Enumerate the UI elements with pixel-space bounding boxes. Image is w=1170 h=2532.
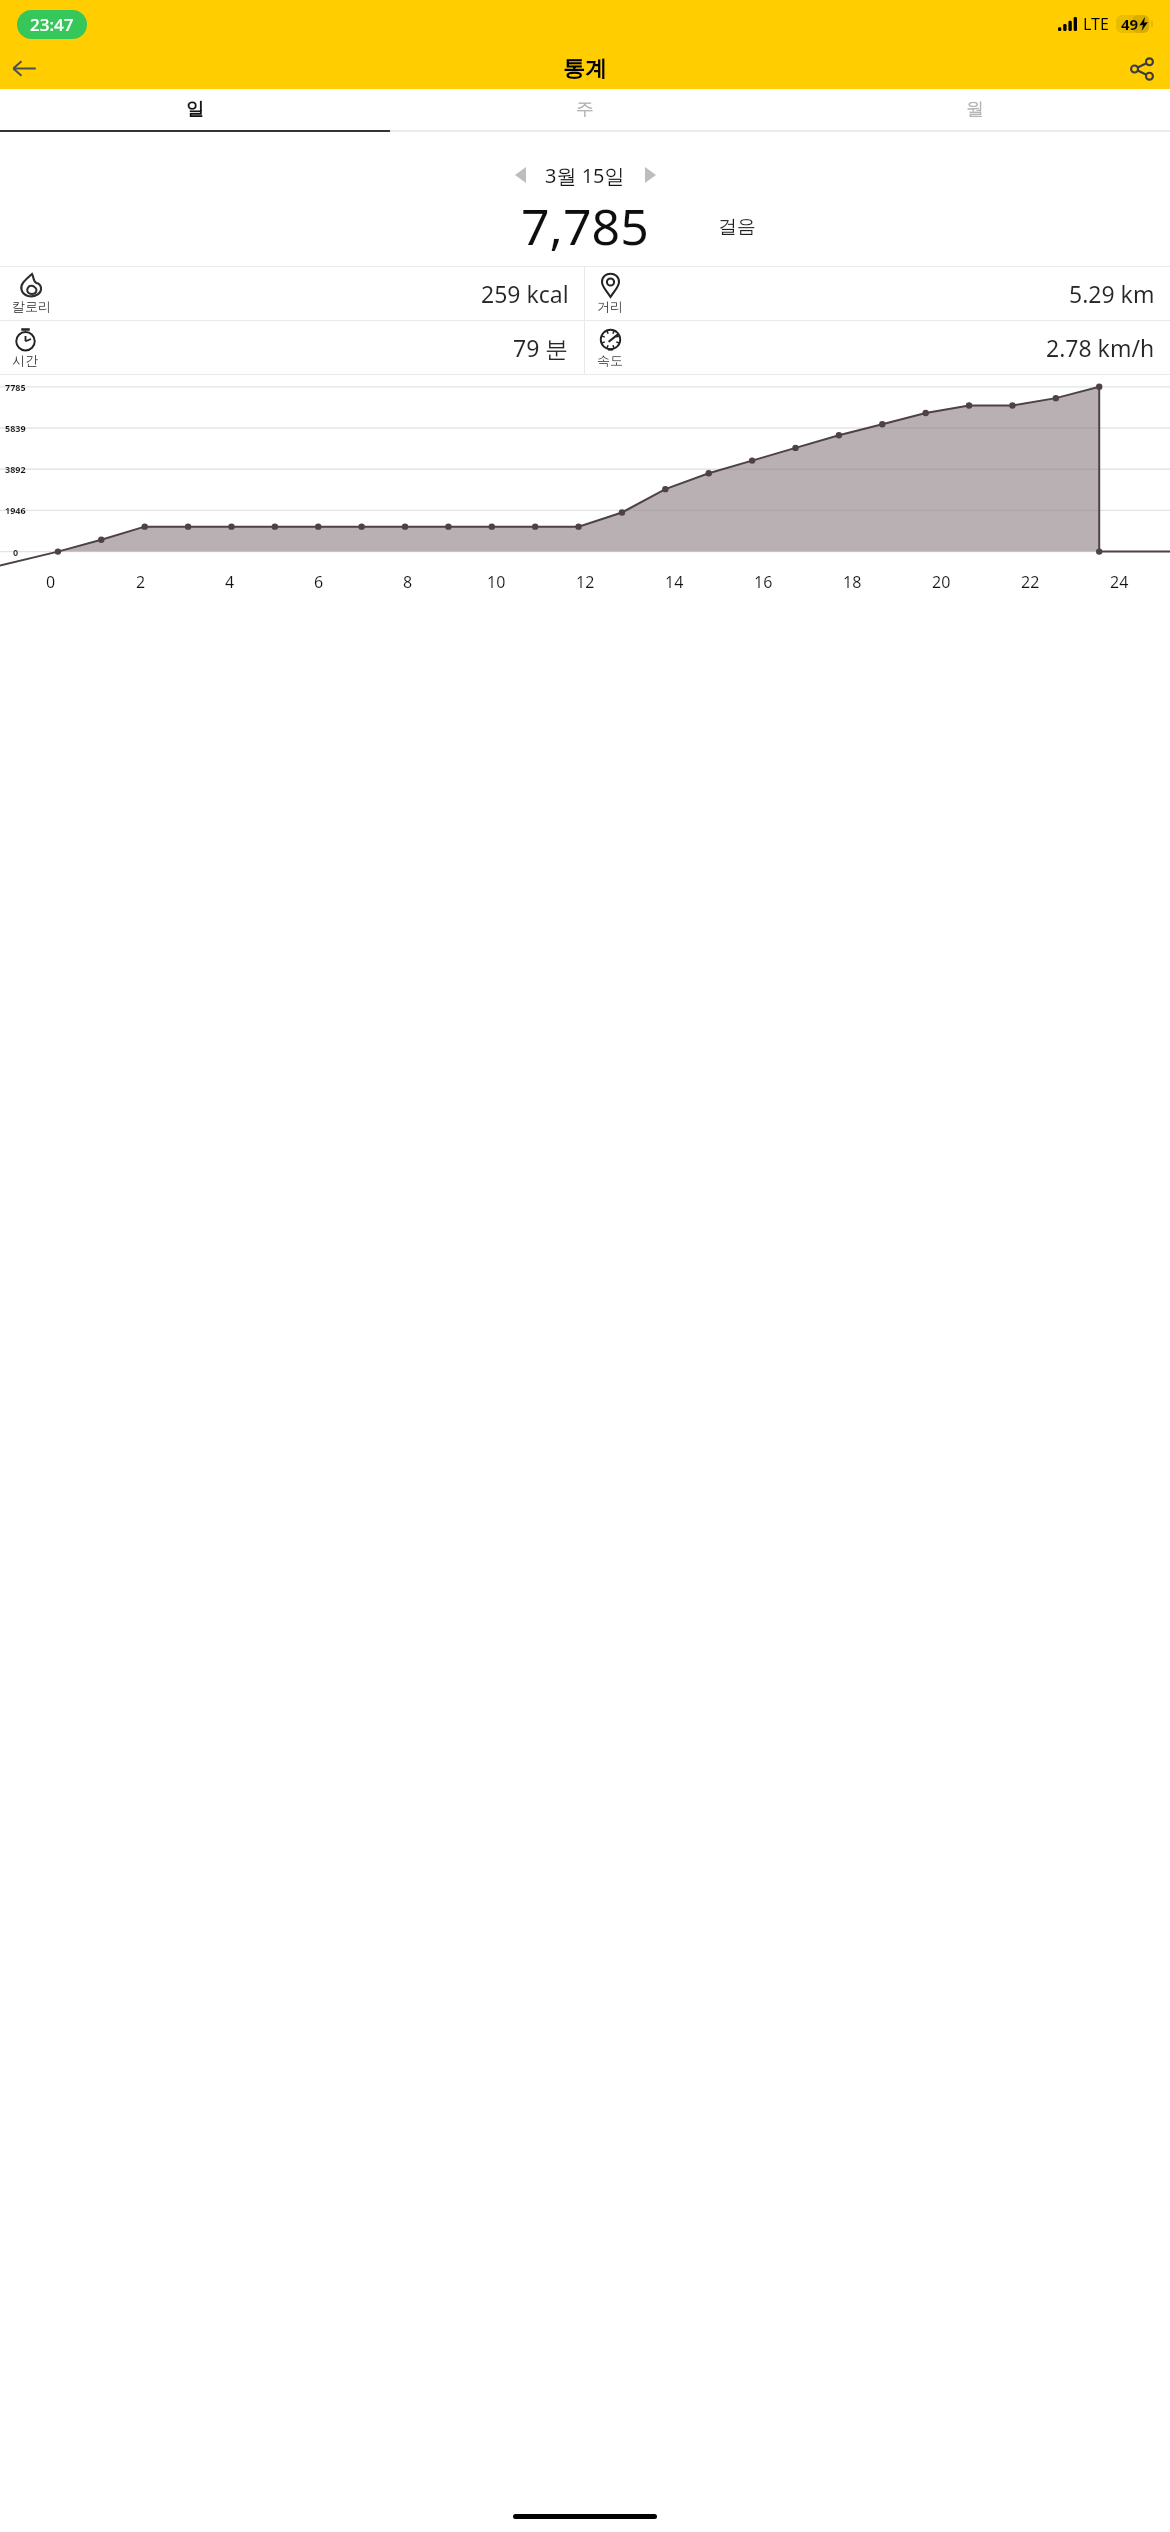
- button[interactable]: 거리: [585, 267, 1170, 320]
- staticText: 7,785: [521, 192, 649, 256]
- staticText: 8: [403, 571, 413, 593]
- staticText: 24: [1110, 571, 1129, 593]
- staticText: 거리: [597, 298, 623, 314]
- button[interactable]: 시간: [0, 321, 584, 374]
- staticText: 18: [843, 571, 862, 593]
- staticText: 4: [225, 571, 235, 593]
- staticText: 0: [13, 546, 19, 558]
- staticText: 2.78 km/h: [1046, 332, 1155, 363]
- staticText: 주: [576, 98, 594, 121]
- staticText: 79 분: [513, 332, 569, 363]
- staticText: 20: [932, 571, 951, 593]
- staticText: 2: [136, 571, 146, 593]
- staticText: 12: [576, 571, 595, 593]
- staticText: 23:47: [30, 13, 74, 36]
- button[interactable]: Previous day: [503, 158, 537, 192]
- staticText: LTE: [1083, 13, 1109, 35]
- staticText: 3892: [5, 463, 26, 475]
- staticText: 1946: [5, 504, 26, 516]
- staticText: 14: [665, 571, 684, 593]
- staticText: 일: [186, 98, 204, 121]
- button[interactable]: Next day: [633, 158, 667, 192]
- staticText: 5839: [5, 422, 26, 434]
- button[interactable]: 칼로리: [0, 267, 584, 320]
- staticText: 22: [1021, 571, 1040, 593]
- button[interactable]: 속도: [585, 321, 1170, 374]
- staticText: 속도: [597, 352, 623, 368]
- staticText: 5.29 km: [1069, 278, 1155, 309]
- staticText: 시간: [12, 352, 38, 368]
- staticText: 0: [46, 571, 56, 593]
- staticText: 걸음: [718, 215, 756, 239]
- button[interactable]: 일: [0, 89, 390, 130]
- staticText: 3월 15일: [545, 162, 625, 189]
- staticText: 10: [487, 571, 506, 593]
- staticText: 7785: [5, 381, 26, 393]
- button[interactable]: 월: [780, 89, 1170, 130]
- staticText: 월: [966, 98, 984, 121]
- button[interactable]: Share: [1120, 48, 1164, 89]
- staticText: 16: [754, 571, 773, 593]
- staticText: 49: [1121, 14, 1139, 34]
- staticText: 6: [314, 571, 324, 593]
- staticText: 통계: [563, 55, 607, 83]
- button[interactable]: Back: [2, 48, 46, 89]
- button[interactable]: 주: [390, 89, 780, 130]
- staticText: 칼로리: [12, 298, 51, 314]
- staticText: 259 kcal: [481, 278, 569, 309]
